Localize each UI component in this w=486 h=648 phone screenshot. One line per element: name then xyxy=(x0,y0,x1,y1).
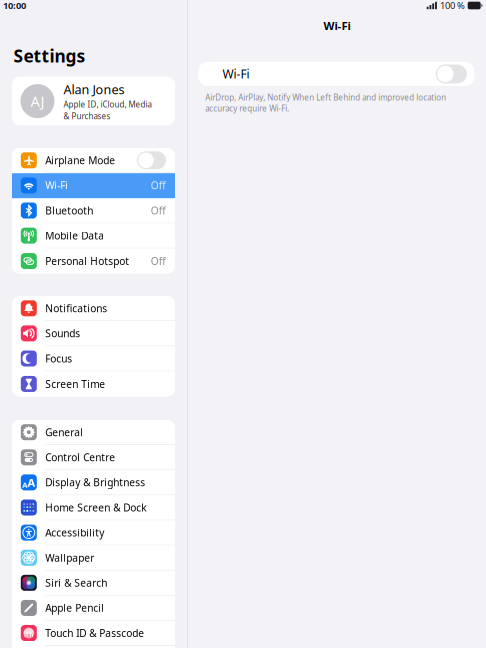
button[interactable]: Airplane Mode xyxy=(12,148,175,173)
staticText: Focus xyxy=(45,352,72,365)
staticText: Wallpaper xyxy=(45,551,94,565)
button[interactable]: Focus xyxy=(12,346,175,371)
button[interactable]: Sounds xyxy=(12,321,175,346)
button[interactable]: Bluetooth xyxy=(12,198,175,223)
button[interactable]: Mobile Data xyxy=(12,223,175,248)
staticText: Siri & Search xyxy=(45,576,107,590)
button[interactable]: Personal Hotspot xyxy=(12,248,175,274)
staticText: Mobile Data xyxy=(45,229,104,242)
staticText: Control Centre xyxy=(45,450,115,464)
button[interactable]: Wi-Fi xyxy=(12,173,175,198)
staticText: & Purchases xyxy=(63,111,110,122)
staticText: Off xyxy=(151,254,166,268)
staticText: Wi-Fi xyxy=(45,178,68,192)
staticText: Wi-Fi xyxy=(323,18,350,33)
staticText: Accessibility xyxy=(45,526,104,539)
button[interactable]: Wallpaper xyxy=(12,545,175,571)
staticText: Apple Pencil xyxy=(45,601,104,615)
button[interactable]: Accessibility xyxy=(12,520,175,545)
button[interactable]: General xyxy=(12,420,175,445)
button[interactable]: Wi-Fi xyxy=(198,62,474,86)
button[interactable]: Touch ID & Passcode xyxy=(12,621,175,646)
staticText: Airplane Mode xyxy=(45,153,115,167)
button[interactable]: A xyxy=(12,470,175,495)
staticText: 100 % xyxy=(440,0,465,12)
staticText: Sounds xyxy=(45,326,80,340)
staticText: 10:00 xyxy=(3,0,26,12)
staticText: Wi-Fi xyxy=(222,66,249,82)
staticText: Home Screen & Dock xyxy=(45,501,146,514)
staticText: Settings xyxy=(13,44,85,68)
staticText: A xyxy=(27,475,35,490)
button[interactable]: Home Screen & Dock xyxy=(12,495,175,520)
staticText: Display & Brightness xyxy=(45,475,145,489)
staticText: General xyxy=(45,425,83,439)
staticText: Bluetooth xyxy=(45,204,93,217)
staticText: Notifications xyxy=(45,301,107,315)
staticText: AirDrop, AirPlay, Notify When Left Behin… xyxy=(205,92,446,114)
button[interactable]: Siri & Search xyxy=(12,571,175,596)
button[interactable]: Screen Time xyxy=(12,371,175,396)
staticText: Touch ID & Passcode xyxy=(45,626,144,640)
button[interactable]: AJ xyxy=(12,77,175,126)
staticText: Screen Time xyxy=(45,377,105,391)
staticText: A xyxy=(22,479,27,490)
staticText: Personal Hotspot xyxy=(45,254,129,268)
staticText: Off xyxy=(151,204,166,217)
button[interactable]: Control Centre xyxy=(12,445,175,470)
staticText: Off xyxy=(151,178,166,192)
staticText: Apple ID, iCloud, Media xyxy=(63,99,151,110)
button[interactable]: Notifications xyxy=(12,296,175,321)
button[interactable]: Apple Pencil xyxy=(12,596,175,621)
staticText: AJ xyxy=(30,91,44,111)
staticText: Alan Jones xyxy=(63,81,124,98)
